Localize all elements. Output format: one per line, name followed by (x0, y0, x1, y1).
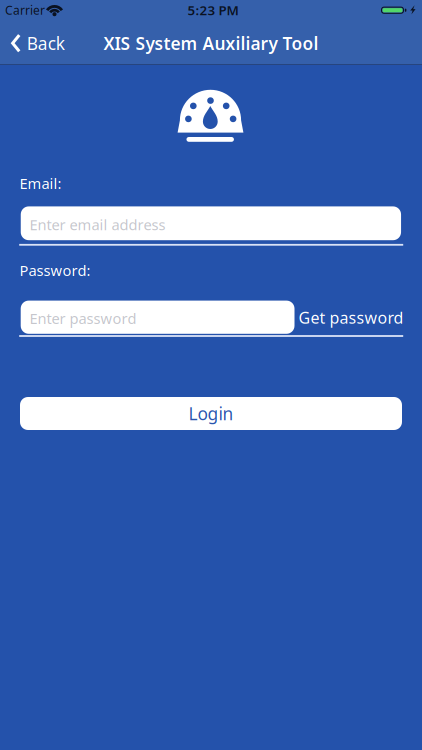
textField[interactable]: Enter email address (21, 206, 401, 240)
staticText: Get password (298, 307, 403, 328)
staticText: Carrier (5, 2, 45, 18)
staticText: Email: (19, 173, 61, 193)
staticText: Login (188, 402, 233, 425)
button[interactable]: Back (13, 32, 65, 55)
staticText: Enter email address (29, 215, 165, 234)
button[interactable]: Login (20, 397, 402, 430)
secureTextField[interactable]: Enter password (21, 301, 294, 334)
staticText: XIS System Auxiliary Tool (103, 32, 318, 55)
staticText: Enter password (29, 309, 136, 328)
staticText: 5:23 PM (187, 1, 238, 19)
staticText: Back (27, 32, 65, 55)
button[interactable]: Get password (298, 307, 403, 328)
staticText: Password: (19, 261, 90, 280)
